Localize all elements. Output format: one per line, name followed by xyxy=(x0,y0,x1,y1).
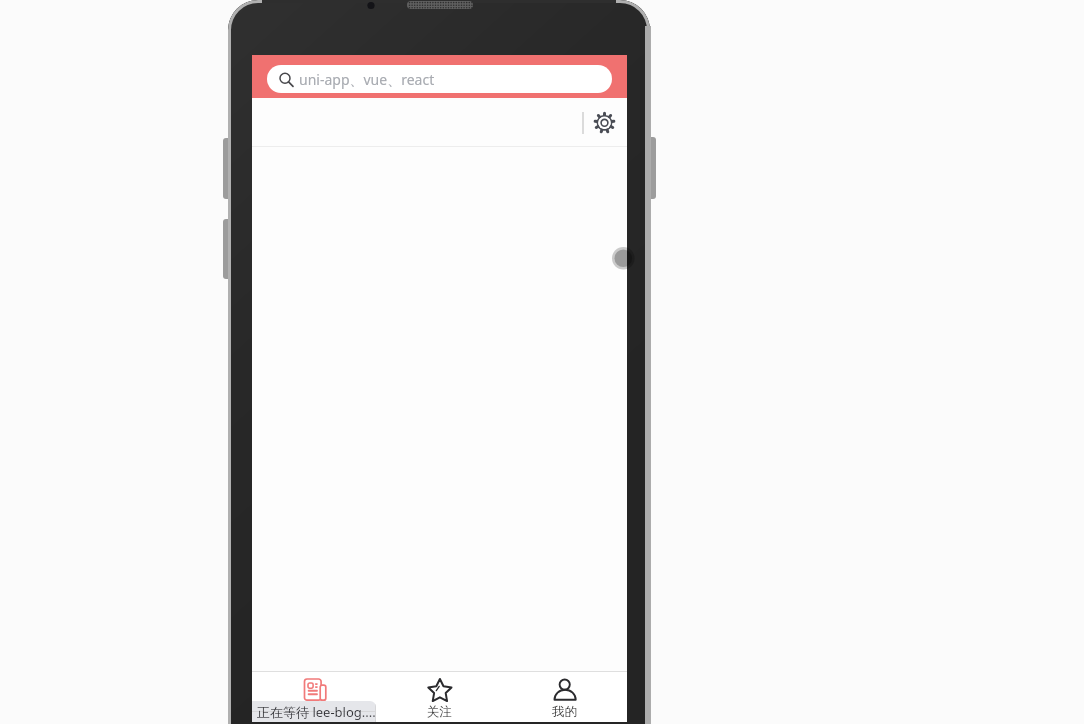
staticText: 我的 xyxy=(552,704,577,720)
button[interactable]: uni-app、vue、react xyxy=(267,65,612,93)
staticText: 正在等待 lee-blog.... xyxy=(257,703,376,721)
button[interactable] xyxy=(612,247,635,270)
staticText: 关注 xyxy=(427,704,452,720)
button[interactable] xyxy=(592,110,618,136)
button[interactable] xyxy=(502,672,627,722)
button[interactable] xyxy=(252,672,377,722)
staticText: uni-app、vue、react xyxy=(299,70,435,89)
button[interactable] xyxy=(377,672,502,722)
